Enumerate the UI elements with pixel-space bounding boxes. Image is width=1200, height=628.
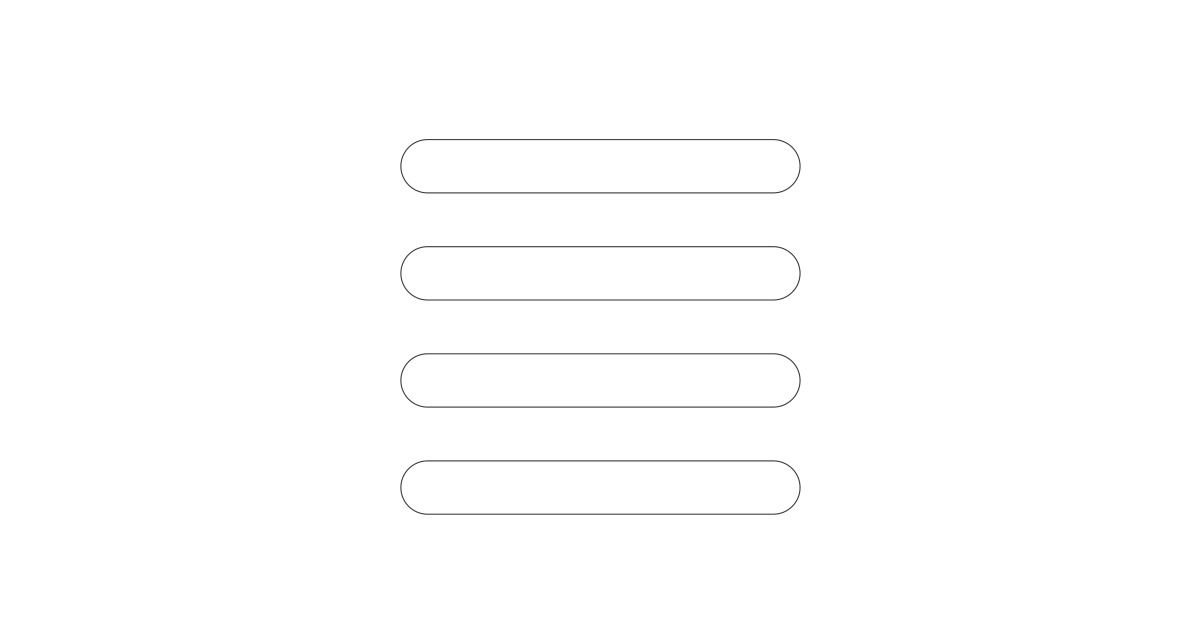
button[interactable]: Row 4 (401, 461, 800, 514)
button[interactable]: Row 3 (401, 354, 800, 407)
button[interactable]: Row 1 (401, 140, 800, 193)
button[interactable]: Row 2 (401, 247, 800, 300)
